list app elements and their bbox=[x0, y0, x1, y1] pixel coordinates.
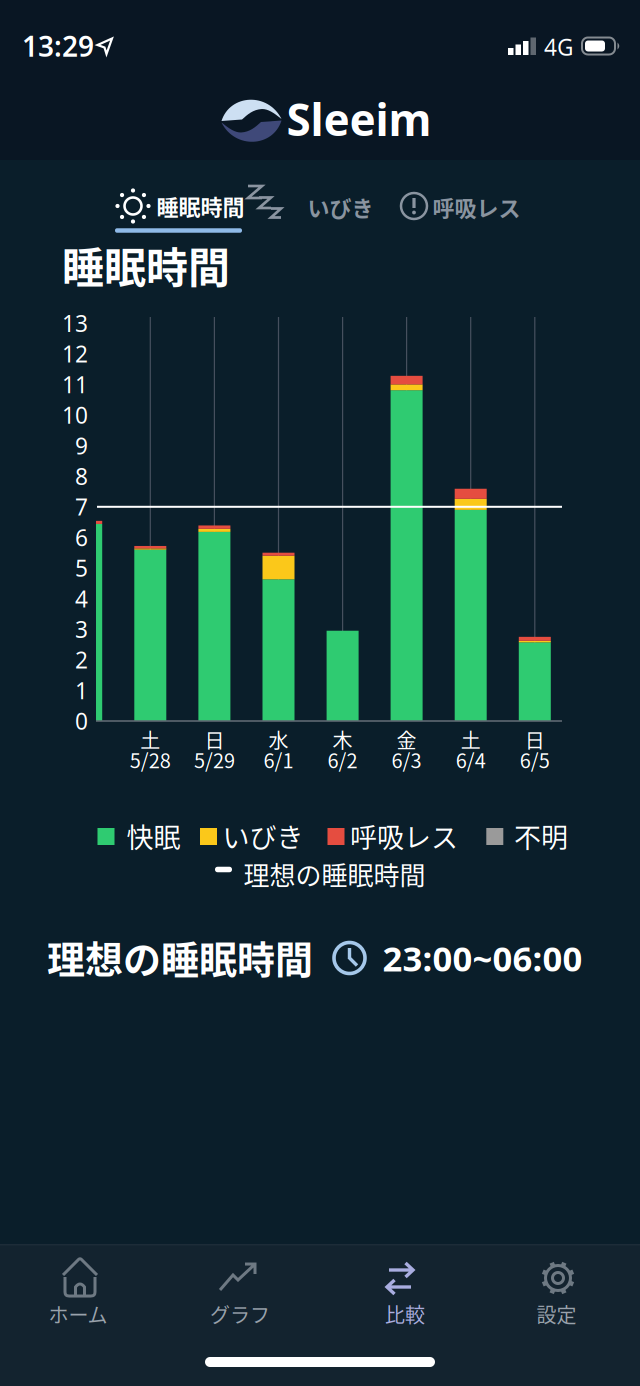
staticText: 10 bbox=[62, 400, 88, 430]
staticText: 6/2 bbox=[328, 745, 358, 774]
staticText: 金 bbox=[397, 725, 417, 754]
staticText: 水 bbox=[268, 725, 288, 754]
staticText: いびき bbox=[307, 191, 373, 223]
staticText: 3 bbox=[75, 614, 88, 644]
staticText: 9 bbox=[75, 430, 88, 461]
staticText: 快眠 bbox=[126, 816, 180, 856]
button[interactable]: 比較 bbox=[320, 1246, 480, 1338]
staticText: 4 bbox=[75, 583, 88, 614]
staticText: 睡眠時間 bbox=[62, 235, 230, 295]
button[interactable]: 睡眠時間 bbox=[110, 183, 248, 235]
staticText: Sleeim bbox=[286, 90, 431, 148]
staticText: 日 bbox=[204, 725, 224, 754]
button[interactable]: ホーム bbox=[0, 1246, 160, 1338]
staticText: 8 bbox=[75, 461, 88, 491]
staticText: ホーム bbox=[48, 1299, 107, 1328]
staticText: 6/4 bbox=[456, 745, 486, 774]
button[interactable]: グラフ bbox=[160, 1246, 320, 1338]
staticText: 木 bbox=[333, 725, 353, 754]
staticText: 6/3 bbox=[392, 745, 422, 774]
staticText: 土 bbox=[461, 725, 481, 754]
button[interactable]: いびき bbox=[245, 183, 372, 228]
staticText: 1 bbox=[75, 675, 88, 705]
staticText: 呼吸レス bbox=[350, 816, 458, 856]
button[interactable]: 呼吸レス bbox=[397, 183, 524, 228]
staticText: 5 bbox=[75, 553, 88, 583]
staticText: 6/5 bbox=[520, 745, 550, 774]
staticText: 6/1 bbox=[263, 745, 293, 774]
staticText: 7 bbox=[75, 492, 88, 522]
staticText: 呼吸レス bbox=[432, 191, 520, 223]
staticText: 睡眠時間 bbox=[156, 190, 244, 222]
staticText: 6 bbox=[75, 522, 88, 552]
staticText: いびき bbox=[222, 816, 303, 856]
staticText: グラフ bbox=[210, 1299, 270, 1328]
button[interactable]: 設定 bbox=[478, 1246, 638, 1338]
staticText: 理想の睡眠時間 bbox=[47, 929, 313, 984]
staticText: 日 bbox=[525, 725, 545, 754]
staticText: 土 bbox=[140, 725, 160, 754]
staticText: 理想の睡眠時間 bbox=[243, 855, 425, 893]
staticText: 0 bbox=[75, 706, 88, 736]
staticText: 13:29 bbox=[22, 27, 94, 65]
staticText: 不明 bbox=[514, 816, 568, 856]
staticText: 比較 bbox=[385, 1299, 425, 1328]
staticText: 11 bbox=[62, 369, 88, 399]
staticText: 12 bbox=[62, 339, 88, 369]
staticText: 4G bbox=[544, 32, 574, 62]
staticText: 13 bbox=[62, 308, 88, 338]
staticText: 5/29 bbox=[194, 745, 235, 774]
staticText: 設定 bbox=[536, 1299, 576, 1328]
staticText: 2 bbox=[75, 645, 88, 675]
staticText: 5/28 bbox=[130, 745, 171, 774]
staticText: 23:00~06:00 bbox=[382, 935, 582, 981]
